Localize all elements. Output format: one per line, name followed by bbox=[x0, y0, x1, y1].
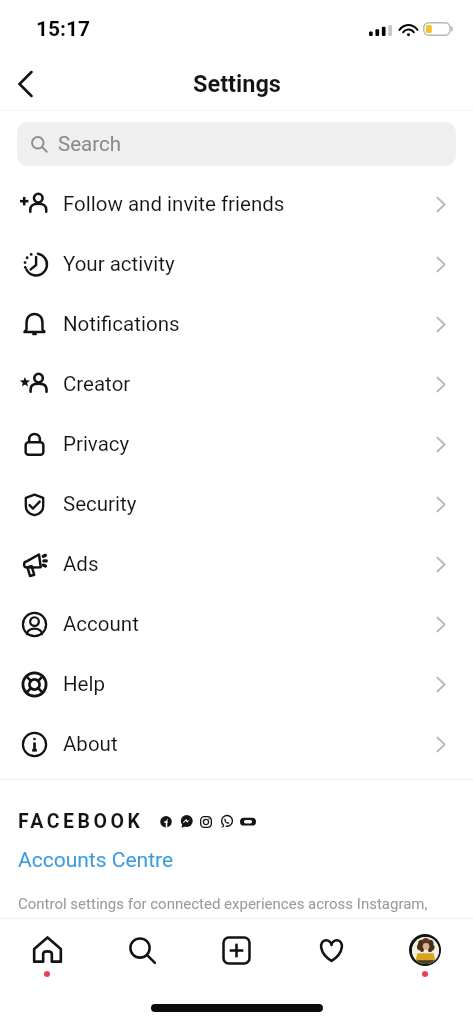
button[interactable]: Back bbox=[0, 58, 50, 110]
button[interactable]: Create bbox=[200, 919, 272, 984]
staticText: Settings bbox=[193, 70, 281, 98]
staticText: Ads bbox=[63, 552, 436, 576]
staticText: Privacy bbox=[63, 432, 436, 456]
button[interactable]: Security bbox=[0, 474, 473, 534]
button[interactable]: About bbox=[0, 714, 473, 774]
staticText: Notifications bbox=[63, 312, 436, 336]
staticText: Search bbox=[58, 132, 121, 156]
button[interactable]: Account bbox=[0, 594, 473, 654]
button[interactable]: Search bbox=[106, 919, 178, 984]
staticText: Help bbox=[63, 672, 436, 696]
button[interactable]: Help bbox=[0, 654, 473, 714]
button[interactable]: Profile bbox=[389, 919, 461, 984]
button[interactable]: Search bbox=[17, 122, 456, 166]
staticText: Account bbox=[63, 612, 436, 636]
button[interactable]: Accounts Centre bbox=[18, 848, 174, 873]
staticText: Accounts Centre bbox=[18, 848, 174, 873]
staticText: Control settings for connected experienc… bbox=[18, 895, 428, 913]
staticText: Creator bbox=[63, 372, 436, 396]
button[interactable]: Privacy bbox=[0, 414, 473, 474]
button[interactable]: Follow and invite friends bbox=[0, 174, 473, 234]
button[interactable]: Creator bbox=[0, 354, 473, 414]
button[interactable]: Ads bbox=[0, 534, 473, 594]
button[interactable]: Home bbox=[11, 919, 83, 984]
button[interactable]: Your activity bbox=[0, 234, 473, 294]
staticText: FACEBOOK bbox=[18, 810, 144, 833]
button[interactable]: Notifications bbox=[0, 294, 473, 354]
staticText: About bbox=[63, 732, 436, 756]
button[interactable]: Likes bbox=[295, 919, 367, 984]
staticText: Follow and invite friends bbox=[63, 192, 436, 216]
staticText: Your activity bbox=[63, 252, 436, 276]
staticText: 15:17 bbox=[36, 17, 91, 42]
staticText: Security bbox=[63, 492, 436, 516]
